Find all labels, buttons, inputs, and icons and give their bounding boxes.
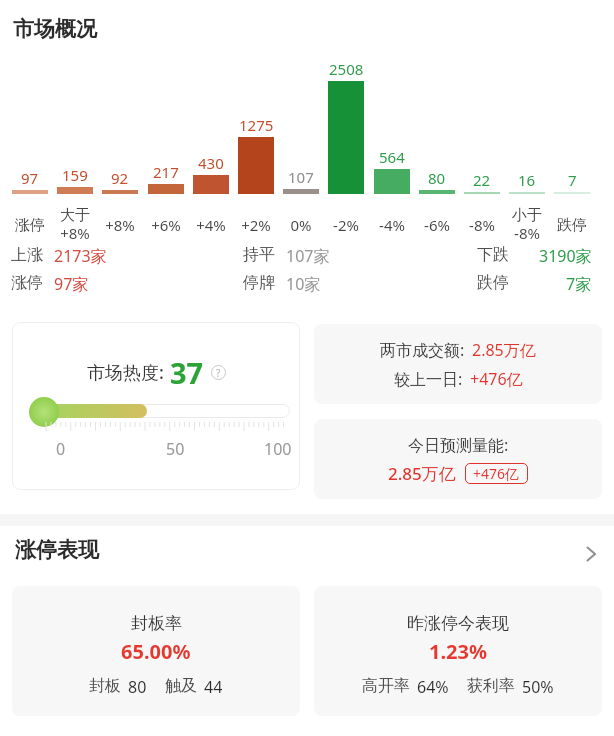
staticText: 封板率	[131, 613, 182, 634]
staticText: -2%	[333, 215, 359, 235]
staticText: 涨停	[11, 273, 43, 293]
staticText: 7	[568, 170, 577, 189]
staticText: 涨停表现	[15, 537, 99, 563]
button[interactable]: 市场热度:	[12, 322, 300, 490]
staticText: +476亿	[473, 464, 520, 483]
staticText: +2%	[241, 215, 271, 235]
staticText: 37	[170, 353, 204, 392]
staticText: 2.85万亿	[472, 339, 536, 361]
staticText: 22	[473, 170, 491, 189]
staticText: 今日预测量能:	[408, 434, 509, 456]
staticText: 小于 -8%	[512, 206, 542, 244]
staticText: 持平	[243, 245, 275, 265]
staticText: 上涨	[11, 245, 43, 265]
staticText: 市场热度:	[87, 360, 164, 385]
staticText: 获利率	[467, 676, 515, 696]
button[interactable]: 今日预测量能:	[314, 419, 602, 499]
staticText: 0	[56, 438, 66, 460]
staticText: 封板	[89, 676, 121, 696]
staticText: 100	[264, 438, 292, 460]
staticText: 停牌	[243, 273, 275, 293]
staticText: +8%	[105, 215, 135, 235]
staticText: +6%	[151, 215, 181, 235]
staticText: 10家	[286, 273, 321, 295]
staticText: 跌停	[477, 273, 509, 293]
staticText: 107家	[286, 245, 330, 267]
staticText: 跌停	[557, 216, 587, 235]
staticText: 昨涨停今表现	[407, 613, 509, 634]
staticText: 92	[111, 168, 129, 187]
staticText: 97	[21, 168, 39, 187]
staticText: 97家	[54, 273, 89, 295]
staticText: 80	[428, 168, 446, 187]
button[interactable]: 昨涨停今表现	[314, 586, 602, 716]
staticText: 2173家	[54, 245, 107, 267]
staticText: 16	[518, 170, 536, 189]
staticText: ?	[216, 366, 221, 380]
staticText: 7家	[566, 273, 592, 295]
staticText: +4%	[196, 215, 226, 235]
staticText: 1275	[239, 115, 274, 134]
staticText: -8%	[469, 215, 495, 235]
staticText: 市场概况	[13, 16, 97, 42]
staticText: 50	[166, 438, 185, 460]
staticText: 564	[379, 147, 405, 166]
staticText: 0%	[290, 215, 312, 235]
staticText: 80	[128, 676, 147, 698]
staticText: 2508	[329, 59, 364, 78]
button[interactable]	[586, 546, 597, 562]
staticText: 44	[204, 676, 223, 698]
staticText: 50%	[522, 676, 554, 698]
staticText: -4%	[379, 215, 405, 235]
staticText: 107	[288, 167, 314, 186]
staticText: 430	[198, 153, 224, 172]
button[interactable]: 两市成交额:	[314, 324, 602, 404]
staticText: 触及	[165, 676, 197, 696]
staticText: 2.85万亿	[388, 462, 456, 485]
staticText: 1.23%	[429, 638, 487, 665]
staticText: +476亿	[470, 368, 523, 390]
staticText: 涨停	[15, 216, 45, 235]
staticText: -6%	[424, 215, 450, 235]
staticText: 159	[62, 165, 88, 184]
staticText: 大于 +8%	[60, 206, 90, 244]
staticText: 64%	[417, 676, 449, 698]
staticText: 较上一日:	[394, 368, 463, 390]
staticText: 217	[153, 162, 179, 181]
staticText: 高开率	[362, 676, 410, 696]
staticText: 3190家	[539, 245, 592, 267]
staticText: 65.00%	[121, 638, 191, 665]
button[interactable]: 封板率	[12, 586, 300, 716]
staticText: 下跌	[477, 245, 509, 265]
staticText: 两市成交额:	[380, 339, 465, 361]
